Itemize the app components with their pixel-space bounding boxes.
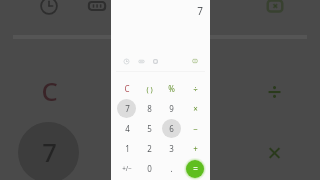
staticText: =: [193, 163, 198, 174]
staticText: 9: [169, 103, 174, 114]
button[interactable]: 7: [177, 0, 222, 23]
staticText: ÷: [193, 83, 198, 94]
staticText: ( ): [113, 76, 134, 107]
button[interactable]: 9: [138, 122, 253, 180]
button[interactable]: History: [123, 58, 130, 65]
button[interactable]: 7: [109, 99, 145, 118]
staticText: 4: [125, 123, 130, 134]
button[interactable]: ÷: [217, 61, 320, 122]
staticText: %: [168, 83, 175, 94]
button[interactable]: ( ): [133, 80, 165, 97]
button[interactable]: +: [177, 139, 213, 158]
staticText: 1: [125, 143, 130, 154]
button[interactable]: ×: [177, 99, 213, 118]
staticText: .: [170, 163, 173, 174]
staticText: ( ): [146, 84, 153, 94]
staticText: 0: [147, 163, 152, 174]
staticText: 6: [169, 123, 174, 134]
button[interactable]: 9: [153, 99, 189, 118]
staticText: +/−: [122, 164, 132, 173]
button[interactable]: .: [153, 159, 189, 178]
button[interactable]: 2: [131, 139, 167, 158]
button[interactable]: +/−: [113, 161, 141, 176]
button[interactable]: Backspace: [191, 57, 199, 65]
staticText: +: [193, 143, 198, 154]
button[interactable]: ×: [217, 122, 320, 180]
staticText: 9: [188, 135, 203, 170]
button[interactable]: 7: [0, 122, 107, 180]
button[interactable]: −: [177, 119, 213, 138]
staticText: 8: [115, 135, 130, 170]
button[interactable]: ÷: [177, 79, 213, 98]
staticText: −: [193, 123, 198, 134]
button[interactable]: Angle unit: [86, 0, 108, 17]
button[interactable]: 8: [131, 99, 167, 118]
staticText: 3: [169, 143, 174, 154]
button[interactable]: %: [138, 61, 253, 122]
button[interactable]: Keypad: [152, 58, 159, 65]
staticText: C: [124, 83, 130, 94]
staticText: ÷: [267, 74, 282, 109]
staticText: 2: [147, 143, 152, 154]
button[interactable]: 4: [109, 119, 145, 138]
button[interactable]: =: [177, 159, 213, 178]
button[interactable]: Backspace: [262, 0, 288, 19]
staticText: 7: [197, 4, 203, 18]
staticText: 7: [42, 135, 57, 170]
button[interactable]: C: [109, 79, 145, 98]
button[interactable]: %: [153, 79, 189, 98]
staticText: 7: [125, 103, 130, 114]
staticText: ×: [193, 103, 198, 114]
button[interactable]: 5: [131, 119, 167, 138]
button[interactable]: 3: [153, 139, 189, 158]
button[interactable]: 0: [131, 159, 167, 178]
button[interactable]: 6: [153, 119, 189, 138]
button[interactable]: History: [38, 0, 60, 17]
button[interactable]: C: [0, 61, 107, 122]
button[interactable]: Angle unit: [138, 58, 145, 65]
staticText: %: [185, 74, 207, 109]
button[interactable]: 1: [109, 139, 145, 158]
staticText: 5: [147, 123, 152, 134]
staticText: C: [41, 74, 58, 109]
button[interactable]: ( ): [71, 64, 175, 119]
staticText: 8: [147, 103, 152, 114]
button[interactable]: 8: [65, 122, 180, 180]
staticText: ×: [267, 135, 282, 170]
